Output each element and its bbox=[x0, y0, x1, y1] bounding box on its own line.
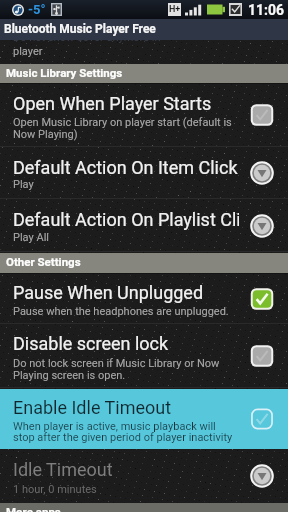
staticText: Pause When Unplugged bbox=[13, 282, 204, 303]
button[interactable] bbox=[0, 150, 288, 197]
staticText: -5° bbox=[28, 2, 46, 17]
staticText: Pause when the headphones are unplugged. bbox=[13, 305, 229, 318]
staticText: 11:06 bbox=[248, 2, 285, 18]
staticText: player bbox=[13, 45, 43, 58]
staticText: Default Action On Item Click bbox=[13, 157, 238, 178]
staticText: Open Music Library on player start (defa… bbox=[13, 116, 232, 129]
staticText: stop after the given period of player in… bbox=[13, 431, 233, 444]
button[interactable] bbox=[0, 86, 288, 146]
staticText: Default Action On Playlist Click bbox=[13, 209, 239, 230]
button[interactable]: Open options bbox=[250, 161, 274, 185]
button[interactable]: Toggle bbox=[250, 287, 274, 311]
staticText: Play All bbox=[13, 231, 49, 244]
staticText: More apps bbox=[6, 505, 61, 512]
staticText: 1 hour, 0 minutes bbox=[13, 483, 97, 496]
button[interactable] bbox=[0, 390, 288, 450]
staticText: Music Library Settings bbox=[6, 66, 123, 79]
button[interactable] bbox=[0, 275, 288, 324]
staticText: Idle Timeout bbox=[13, 459, 113, 480]
staticText: Now Playing) bbox=[13, 128, 78, 141]
staticText: Do not lock screen if Music Library or N… bbox=[13, 357, 220, 370]
staticText: Do not show cover anymore in bbox=[13, 31, 161, 44]
staticText: When player is active, music playback wi… bbox=[13, 420, 216, 433]
button[interactable] bbox=[0, 326, 288, 387]
staticText: Other Settings bbox=[6, 255, 81, 268]
button[interactable]: Open options bbox=[250, 464, 274, 488]
staticText: Disable screen lock bbox=[13, 333, 169, 354]
staticText: Bluetooth Music Player Free bbox=[4, 22, 156, 36]
staticText: H+ bbox=[169, 4, 181, 15]
button[interactable] bbox=[0, 202, 288, 249]
button[interactable]: Open options bbox=[250, 214, 274, 238]
staticText: Playing screen is open. bbox=[13, 369, 126, 382]
button[interactable]: Toggle bbox=[250, 344, 274, 368]
staticText: Open When Player Starts bbox=[13, 93, 212, 114]
button[interactable]: Toggle bbox=[250, 103, 274, 127]
staticText: Play bbox=[13, 178, 34, 191]
button[interactable] bbox=[0, 452, 288, 501]
staticText: Enable Idle Timeout bbox=[13, 397, 172, 418]
button[interactable]: Toggle bbox=[250, 407, 274, 431]
